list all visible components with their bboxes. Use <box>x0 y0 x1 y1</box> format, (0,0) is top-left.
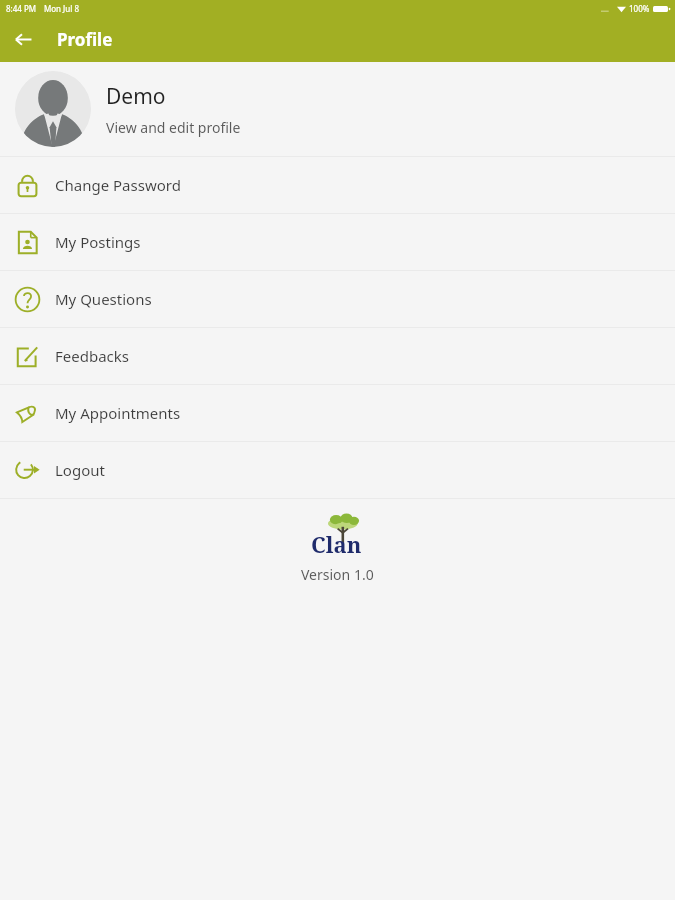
staticText: View and edit profile <box>106 118 241 137</box>
staticText: Mon Jul 8 <box>44 3 79 14</box>
button[interactable]: My Appointments <box>0 385 675 441</box>
staticText: Logout <box>55 460 105 480</box>
staticText: Profile <box>57 28 113 51</box>
staticText: Clan <box>311 529 362 559</box>
button[interactable]: My Postings <box>0 214 675 270</box>
staticText: My Questions <box>55 289 152 309</box>
staticText: Feedbacks <box>55 346 129 366</box>
staticText: 100% <box>629 3 650 14</box>
button[interactable]: Feedbacks <box>0 328 675 384</box>
button[interactable]: Change Password <box>0 157 675 213</box>
button[interactable]: Demo <box>0 62 675 156</box>
button[interactable]: Back <box>8 24 38 54</box>
staticText: 8:44 PM <box>6 3 37 14</box>
staticText: Demo <box>106 82 166 111</box>
button[interactable]: Logout <box>0 442 675 498</box>
staticText: My Appointments <box>55 403 181 423</box>
button[interactable]: My Questions <box>0 271 675 327</box>
staticText: Version 1.0 <box>301 565 374 584</box>
staticText: Change Password <box>55 175 181 195</box>
staticText: My Postings <box>55 232 141 252</box>
